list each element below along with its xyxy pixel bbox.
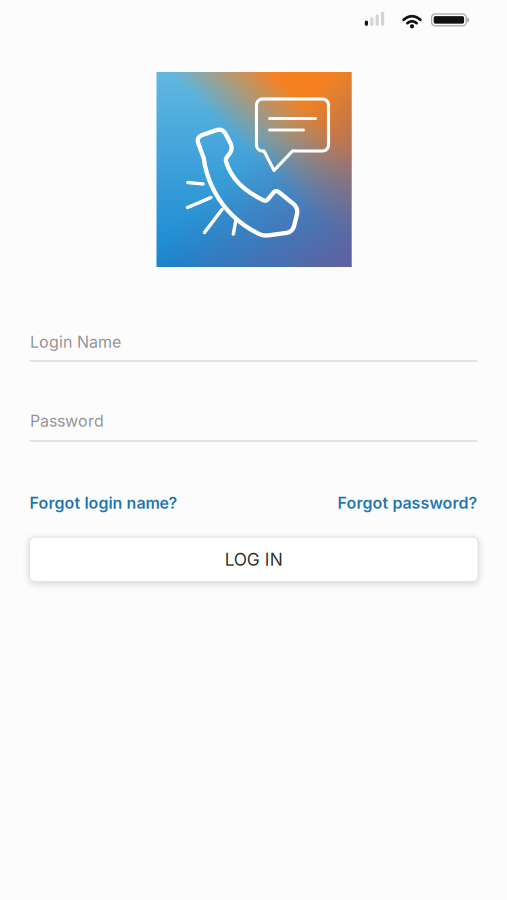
staticText: Forgot password? xyxy=(337,493,477,512)
staticText: Password xyxy=(30,412,104,430)
textField[interactable]: Login Name xyxy=(30,330,478,354)
button[interactable]: LOG IN xyxy=(29,537,479,582)
staticText: Login Name xyxy=(30,333,121,351)
staticText: Forgot login name? xyxy=(29,493,177,512)
staticText: LOG IN xyxy=(225,549,283,569)
secureTextField[interactable]: Password xyxy=(30,409,478,433)
button[interactable]: Forgot password? xyxy=(337,493,477,512)
button[interactable]: Forgot login name? xyxy=(29,493,177,512)
